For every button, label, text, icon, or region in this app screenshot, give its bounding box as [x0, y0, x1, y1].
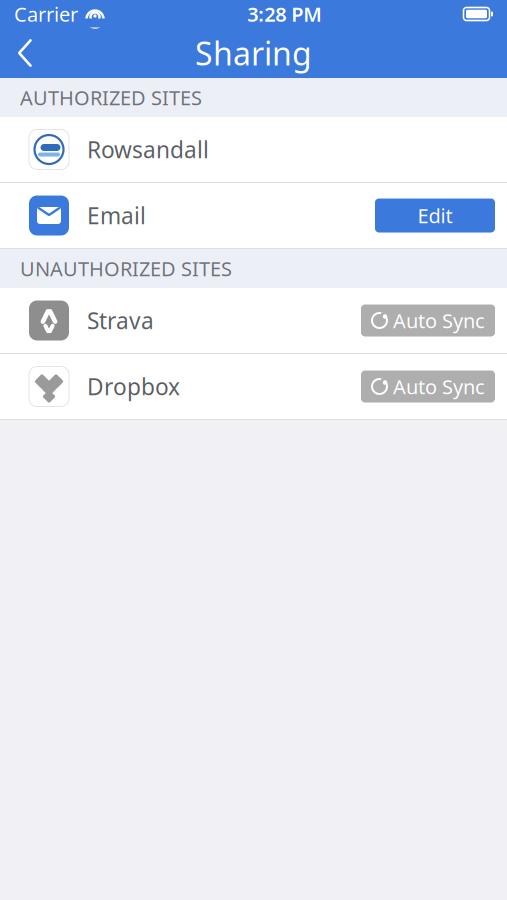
staticText: Carrier [14, 1, 78, 27]
staticText: Sharing [195, 32, 312, 74]
button[interactable]: Edit [375, 198, 495, 232]
staticText: Dropbox [87, 371, 180, 401]
staticText: AUTHORIZED SITES [20, 84, 202, 111]
staticText: Auto Sync [393, 307, 485, 334]
staticText: 3:28 PM [247, 1, 322, 27]
button[interactable]: Auto Sync [361, 304, 495, 336]
staticText: Email [87, 200, 146, 230]
staticText: Edit [417, 202, 452, 229]
button[interactable]: Dropbox [0, 354, 507, 420]
button[interactable]: Email [0, 183, 507, 249]
button[interactable]: Auto Sync [361, 370, 495, 402]
button[interactable]: Rowsandall [0, 117, 507, 183]
button[interactable]: Back [0, 30, 50, 76]
staticText: Rowsandall [87, 134, 209, 164]
staticText: Auto Sync [393, 373, 485, 400]
staticText: UNAUTHORIZED SITES [20, 255, 232, 282]
staticText: Strava [87, 305, 154, 335]
button[interactable]: Strava [0, 288, 507, 354]
